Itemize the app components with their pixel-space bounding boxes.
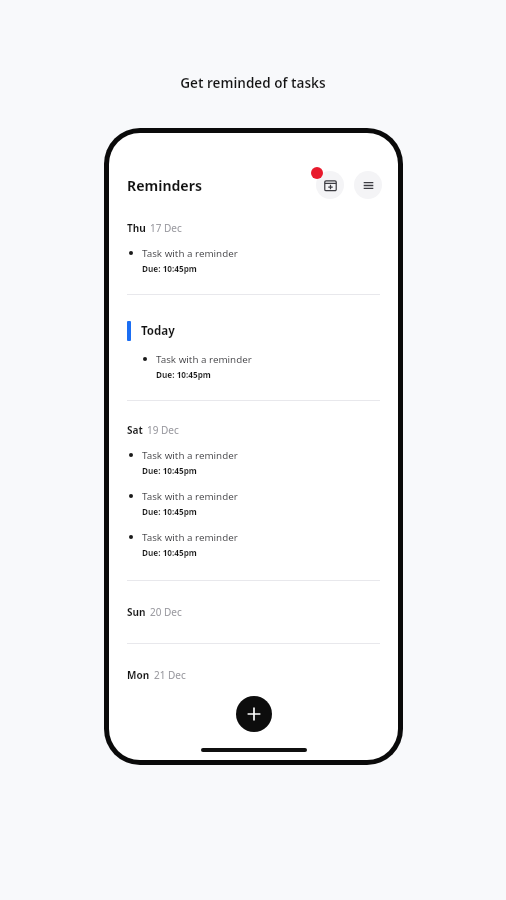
button[interactable]: Task with a reminder [143,353,380,380]
staticText: Due: 10:45pm [142,506,197,517]
button[interactable]: Sun [127,605,380,619]
staticText: Thu [127,221,146,235]
staticText: Mon [127,668,150,682]
staticText: Reminders [127,176,202,195]
staticText: Sun [127,605,146,619]
button[interactable]: New reminder [314,169,346,201]
staticText: Task with a reminder [142,247,238,260]
staticText: 20 Dec [150,605,182,619]
button[interactable]: Task with a reminder [129,490,380,517]
staticText: Task with a reminder [142,531,238,544]
button[interactable]: Menu [354,171,382,199]
staticText: 21 Dec [154,668,186,682]
staticText: Today [141,323,175,339]
button[interactable]: Task with a reminder [129,247,380,274]
staticText: Due: 10:45pm [142,547,197,558]
staticText: 17 Dec [150,221,182,235]
staticText: 19 Dec [147,423,179,437]
button[interactable]: Task with a reminder [129,449,380,476]
button[interactable]: Sat [127,423,380,437]
button[interactable]: Add reminder [236,696,272,732]
staticText: Due: 10:45pm [142,263,197,274]
staticText: Get reminded of tasks [180,74,326,92]
staticText: Due: 10:45pm [142,465,197,476]
button[interactable]: Today [127,321,398,341]
staticText: Task with a reminder [156,353,252,366]
button[interactable]: Thu [127,221,380,235]
button[interactable]: Task with a reminder [129,531,380,558]
staticText: Due: 10:45pm [156,369,211,380]
staticText: Task with a reminder [142,490,238,503]
staticText: Task with a reminder [142,449,238,462]
staticText: Sat [127,423,143,437]
button[interactable]: Mon [127,668,380,682]
